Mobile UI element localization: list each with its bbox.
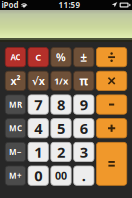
button[interactable]: 8 <box>51 95 71 114</box>
staticText: ± <box>80 49 87 65</box>
button[interactable]: 7 <box>28 95 48 114</box>
staticText: AC <box>10 52 20 62</box>
staticText: 4 <box>34 118 42 138</box>
button[interactable]: AC <box>5 47 25 67</box>
button[interactable]: Divide <box>96 47 127 67</box>
button[interactable]: 4 <box>28 119 48 138</box>
button[interactable]: Multiply <box>96 71 127 90</box>
button[interactable]: C <box>28 47 48 67</box>
staticText: MC <box>9 123 22 133</box>
staticText: M− <box>9 147 22 157</box>
staticText: √x <box>32 74 45 88</box>
staticText: % <box>56 50 66 64</box>
staticText: 00 <box>55 169 67 183</box>
staticText: 8 <box>57 95 65 114</box>
staticText: 0 <box>34 166 42 185</box>
staticText: 7 <box>34 95 42 114</box>
button[interactable]: 2 <box>51 142 71 162</box>
button[interactable]: MR <box>5 95 25 114</box>
button[interactable]: 00 <box>51 166 71 185</box>
staticText: x² <box>10 74 20 88</box>
button[interactable]: MC <box>5 119 25 138</box>
button[interactable]: . <box>74 166 94 185</box>
button[interactable]: 9 <box>74 95 94 114</box>
button[interactable]: Equals <box>96 142 127 185</box>
staticText: MR <box>9 99 22 110</box>
staticText: 1/x <box>54 75 68 87</box>
button[interactable]: π <box>74 71 94 90</box>
button[interactable]: 0 <box>28 166 48 185</box>
button[interactable]: M+ <box>5 166 25 185</box>
button[interactable]: 3 <box>74 142 94 162</box>
button[interactable]: x² <box>5 71 25 90</box>
staticText: 9 <box>80 95 88 114</box>
staticText: iPod <box>1 0 18 10</box>
button[interactable]: % <box>51 47 71 67</box>
staticText: M+ <box>9 170 22 181</box>
button[interactable]: 6 <box>74 119 94 138</box>
staticText: 11:59 <box>58 0 80 10</box>
button[interactable]: Plus <box>96 119 127 138</box>
button[interactable]: 1/x <box>51 71 71 90</box>
staticText: 2 <box>57 142 65 162</box>
button[interactable]: M− <box>5 142 25 162</box>
staticText: . <box>82 166 86 185</box>
button[interactable]: 5 <box>51 119 71 138</box>
button[interactable]: √x <box>28 71 48 90</box>
staticText: C <box>35 51 41 63</box>
staticText: 5 <box>57 118 65 138</box>
staticText: 1 <box>34 142 42 162</box>
staticText: π <box>79 73 88 89</box>
button[interactable]: 1 <box>28 142 48 162</box>
button[interactable]: ± <box>74 47 94 67</box>
button[interactable]: Minus <box>96 95 127 114</box>
staticText: 3 <box>80 142 88 162</box>
staticText: 6 <box>80 118 88 138</box>
